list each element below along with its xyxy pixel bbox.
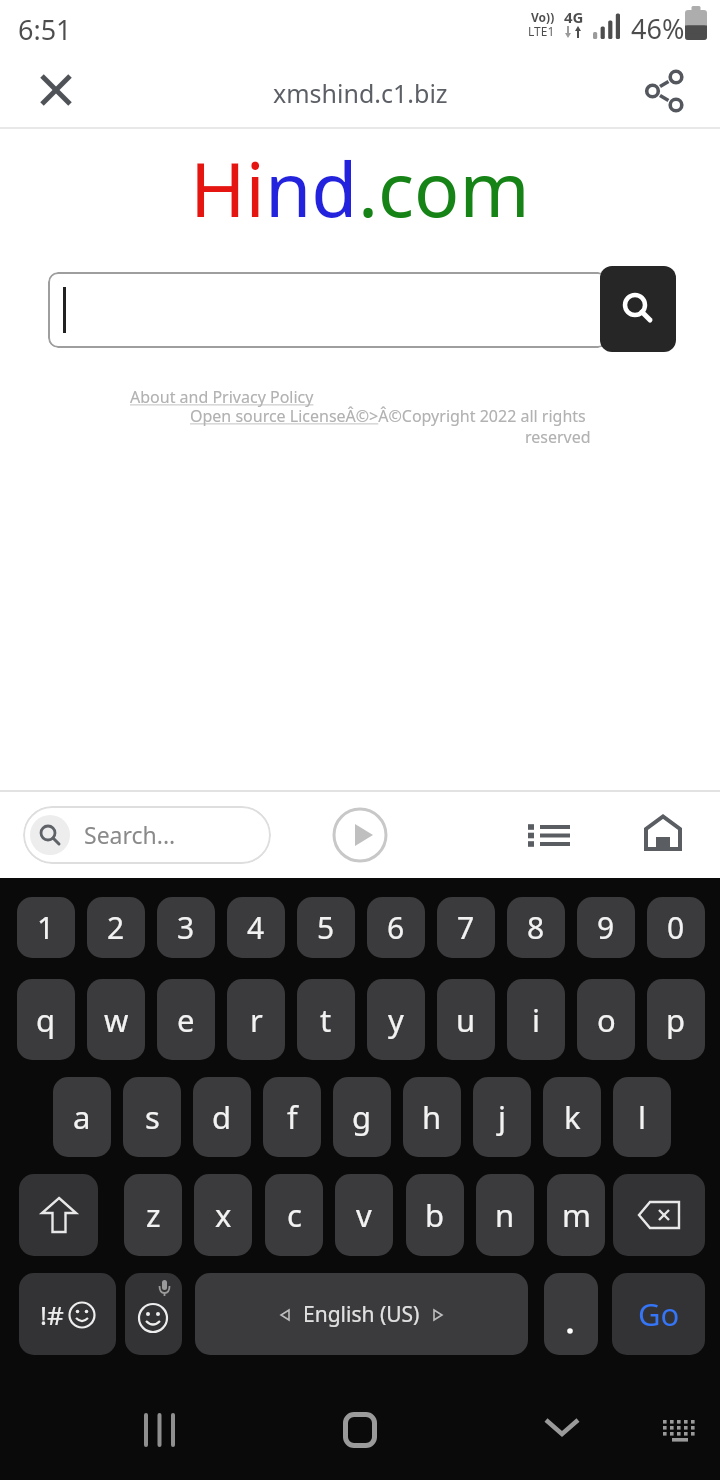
- staticText: t: [320, 999, 332, 1041]
- staticText: Hi: [190, 137, 265, 239]
- button[interactable]: [330, 805, 390, 865]
- staticText: LTE1: [528, 23, 555, 39]
- staticText: 9: [597, 907, 615, 948]
- staticText: Go: [638, 1293, 680, 1335]
- button[interactable]: [613, 1174, 705, 1256]
- staticText: k: [564, 1096, 581, 1138]
- button[interactable]: [525, 811, 573, 859]
- staticText: reserved: [525, 426, 591, 448]
- button[interactable]: 4: [227, 897, 285, 958]
- staticText: f: [287, 1096, 298, 1138]
- staticText: b: [425, 1194, 445, 1236]
- staticText: o: [597, 999, 616, 1041]
- button[interactable]: 9: [577, 897, 635, 958]
- staticText: w: [104, 999, 129, 1041]
- button[interactable]: c: [265, 1174, 323, 1256]
- staticText: y: [388, 999, 404, 1041]
- staticText: g: [352, 1096, 372, 1138]
- button[interactable]: y: [367, 979, 425, 1060]
- button[interactable]: r: [227, 979, 285, 1060]
- button[interactable]: b: [406, 1174, 464, 1256]
- button[interactable]: 1: [17, 897, 75, 958]
- staticText: 8: [527, 907, 545, 948]
- button[interactable]: 3: [157, 897, 215, 958]
- staticText: l: [638, 1096, 646, 1138]
- button[interactable]: !#: [19, 1273, 116, 1355]
- staticText: m: [562, 1194, 591, 1236]
- button[interactable]: [125, 1273, 182, 1355]
- staticText: About and Privacy Policy: [130, 386, 314, 408]
- button[interactable]: 0: [647, 897, 705, 958]
- staticText: 4G: [564, 7, 584, 27]
- button[interactable]: 8: [507, 897, 565, 958]
- staticText: Open source LicenseÂ©>Â©Copyright 2022 a…: [190, 405, 586, 427]
- button[interactable]: 2: [87, 897, 145, 958]
- staticText: c: [287, 1194, 302, 1236]
- button[interactable]: n: [476, 1174, 534, 1256]
- staticText: 1: [37, 907, 55, 948]
- button[interactable]: u: [437, 979, 495, 1060]
- button[interactable]: l: [613, 1077, 671, 1157]
- button[interactable]: p: [647, 979, 705, 1060]
- staticText: 6:51: [18, 11, 72, 48]
- staticText: s: [145, 1096, 160, 1138]
- staticText: nd: [265, 137, 358, 239]
- button[interactable]: [544, 1273, 598, 1355]
- staticText: q: [36, 999, 56, 1041]
- button[interactable]: [19, 1174, 98, 1256]
- button[interactable]: m: [547, 1174, 605, 1256]
- staticText: i: [532, 999, 540, 1041]
- button[interactable]: [639, 811, 687, 859]
- button[interactable]: x: [194, 1174, 252, 1256]
- staticText: 4: [247, 907, 265, 948]
- staticText: j: [498, 1096, 506, 1138]
- staticText: .com: [358, 137, 530, 239]
- button[interactable]: s: [123, 1077, 181, 1157]
- button[interactable]: Go: [612, 1273, 705, 1355]
- staticText: p: [666, 999, 686, 1041]
- button[interactable]: d: [193, 1077, 251, 1157]
- button[interactable]: [32, 66, 80, 114]
- button[interactable]: j: [473, 1077, 531, 1157]
- button[interactable]: g: [333, 1077, 391, 1157]
- button[interactable]: i: [507, 979, 565, 1060]
- button[interactable]: [336, 1406, 384, 1454]
- button[interactable]: [600, 266, 676, 352]
- staticText: n: [495, 1194, 515, 1236]
- button[interactable]: [636, 66, 684, 114]
- staticText: r: [250, 999, 263, 1041]
- staticText: !#: [40, 1297, 64, 1332]
- button[interactable]: 6: [367, 897, 425, 958]
- button[interactable]: Search...: [23, 806, 271, 864]
- staticText: 5: [317, 907, 335, 948]
- staticText: 46%: [631, 10, 685, 47]
- staticText: x: [215, 1194, 232, 1236]
- button[interactable]: t: [297, 979, 355, 1060]
- staticText: d: [212, 1096, 232, 1138]
- staticText: xmshind.c1.biz: [273, 76, 448, 110]
- button[interactable]: z: [124, 1174, 182, 1256]
- button[interactable]: English (US): [195, 1273, 528, 1355]
- button[interactable]: q: [17, 979, 75, 1060]
- staticText: e: [177, 999, 195, 1041]
- staticText: a: [73, 1096, 91, 1138]
- staticText: 3: [177, 907, 195, 948]
- button[interactable]: 5: [297, 897, 355, 958]
- button[interactable]: v: [335, 1174, 393, 1256]
- button[interactable]: [48, 272, 608, 348]
- staticText: 0: [667, 907, 685, 948]
- staticText: 7: [457, 907, 475, 948]
- button[interactable]: w: [87, 979, 145, 1060]
- button[interactable]: [538, 1394, 586, 1442]
- staticText: English (US): [303, 1300, 420, 1329]
- button[interactable]: k: [543, 1077, 601, 1157]
- button[interactable]: f: [263, 1077, 321, 1157]
- button[interactable]: o: [577, 979, 635, 1060]
- button[interactable]: e: [157, 979, 215, 1060]
- button[interactable]: [655, 1412, 703, 1448]
- button[interactable]: h: [403, 1077, 461, 1157]
- button[interactable]: [128, 1403, 192, 1451]
- staticText: h: [422, 1096, 442, 1138]
- button[interactable]: 7: [437, 897, 495, 958]
- button[interactable]: a: [53, 1077, 111, 1157]
